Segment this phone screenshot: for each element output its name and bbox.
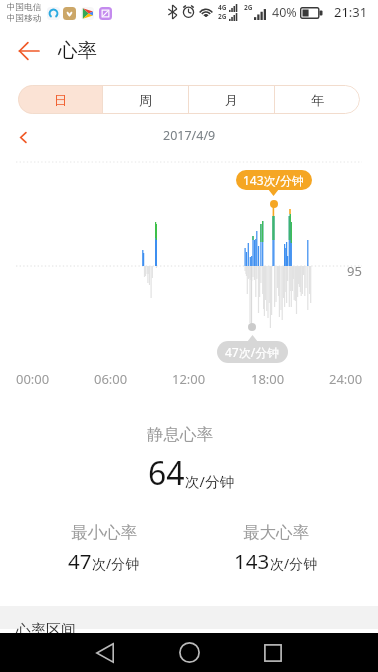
button[interactable]: Previous day — [10, 124, 36, 150]
button[interactable]: Back — [14, 36, 44, 66]
staticText: 静息心率 — [147, 424, 213, 445]
staticText: 18:00 — [251, 370, 285, 388]
button[interactable]: Recents — [253, 633, 293, 672]
staticText: 年 — [311, 92, 324, 108]
staticText: 40% — [272, 4, 297, 21]
staticText: 06:00 — [94, 370, 128, 388]
staticText: 47次/分钟 — [225, 344, 280, 360]
staticText: 次/分钟 — [185, 471, 234, 491]
staticText: 月 — [225, 92, 238, 108]
staticText: 4G — [218, 3, 227, 12]
staticText: 周 — [139, 92, 152, 108]
staticText: 64 — [148, 451, 185, 495]
staticText: 次/分钟 — [270, 554, 318, 573]
button[interactable]: Back — [85, 633, 125, 672]
staticText: 最大心率 — [243, 522, 309, 543]
staticText: 24:00 — [329, 370, 363, 388]
staticText: 95 — [347, 262, 362, 280]
staticText: 2G — [244, 3, 253, 12]
button[interactable]: 年 — [275, 85, 360, 114]
staticText: 47 — [68, 547, 92, 575]
staticText: 次/分钟 — [92, 554, 140, 573]
staticText: 00:00 — [16, 370, 50, 388]
staticText: 心率 — [58, 38, 97, 63]
staticText: 143次/分钟 — [243, 172, 305, 188]
button[interactable]: 日 — [18, 85, 102, 114]
button[interactable]: Home — [169, 633, 209, 672]
staticText: 2G — [218, 12, 227, 21]
staticText: 12:00 — [172, 370, 206, 388]
button[interactable]: 月 — [189, 85, 274, 114]
staticText: 中国电信 — [7, 2, 42, 13]
staticText: 中国移动 — [7, 13, 42, 24]
button[interactable]: 周 — [103, 85, 188, 114]
staticText: 21:31 — [334, 3, 368, 21]
button[interactable]: 心率区间 — [0, 629, 378, 672]
staticText: 心率区间 — [16, 621, 76, 640]
staticText: 日 — [54, 92, 67, 108]
staticText: 最小心率 — [71, 522, 137, 543]
staticText: 2017/4/9 — [163, 127, 216, 144]
staticText: 143 — [234, 547, 270, 575]
